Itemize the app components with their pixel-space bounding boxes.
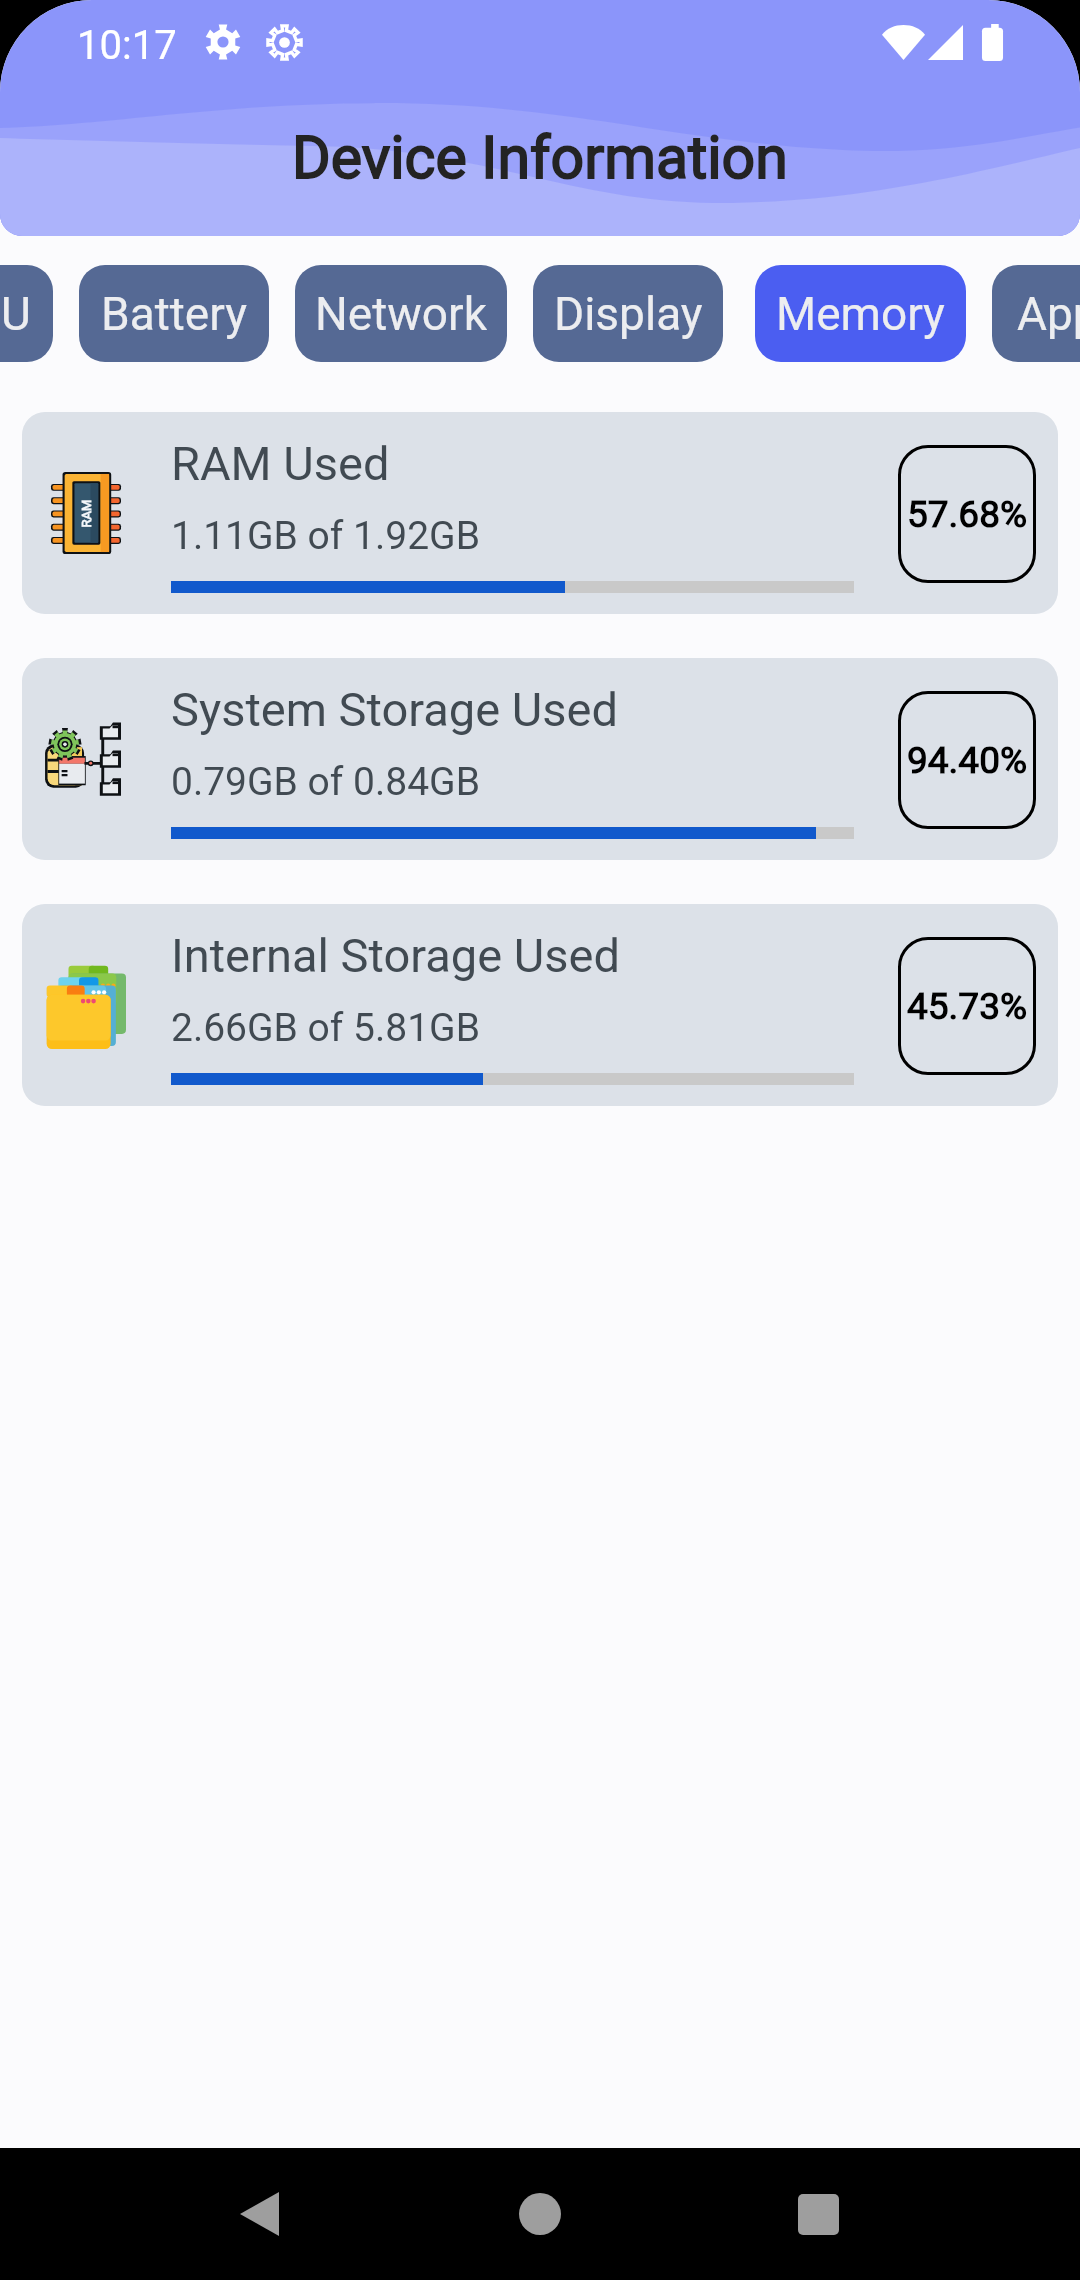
staticText: Network xyxy=(315,287,487,341)
staticText: Internal Storage Used xyxy=(171,928,620,983)
staticText: 2.66GB of 5.81GB xyxy=(171,1005,480,1051)
button[interactable]: Back xyxy=(199,2148,319,2280)
staticText: RAM Used xyxy=(171,436,390,491)
button[interactable]: Recents xyxy=(758,2148,878,2280)
button[interactable]: Settings xyxy=(203,22,243,62)
staticText: CPU xyxy=(0,287,31,341)
staticText: Apps xyxy=(1017,287,1080,341)
staticText: Memory xyxy=(776,287,945,341)
button[interactable]: Display xyxy=(533,265,723,362)
button[interactable]: Battery xyxy=(79,265,269,362)
staticText: 1.11GB of 1.92GB xyxy=(171,513,480,559)
staticText: Display xyxy=(554,287,703,341)
button[interactable]: RAM xyxy=(22,412,1058,614)
staticText: Device Information xyxy=(292,123,788,192)
button[interactable]: CPU xyxy=(0,265,53,362)
staticText: 57.68% xyxy=(907,493,1028,536)
staticText: 0.79GB of 0.84GB xyxy=(171,759,480,805)
button[interactable]: Developer options xyxy=(264,22,304,62)
button[interactable]: Home xyxy=(480,2148,600,2280)
staticText: System Storage Used xyxy=(171,682,618,737)
staticText: 45.73% xyxy=(907,985,1028,1028)
button[interactable]: System Storage Used xyxy=(22,658,1058,860)
staticText: 94.40% xyxy=(907,739,1028,782)
staticText: RAM xyxy=(78,499,93,527)
button[interactable]: Internal Storage Used xyxy=(22,904,1058,1106)
button[interactable]: Apps xyxy=(992,265,1080,362)
staticText: Battery xyxy=(101,287,247,341)
staticText: 10:17 xyxy=(77,22,177,69)
button[interactable]: Network xyxy=(295,265,507,362)
button[interactable]: Memory xyxy=(755,265,966,362)
